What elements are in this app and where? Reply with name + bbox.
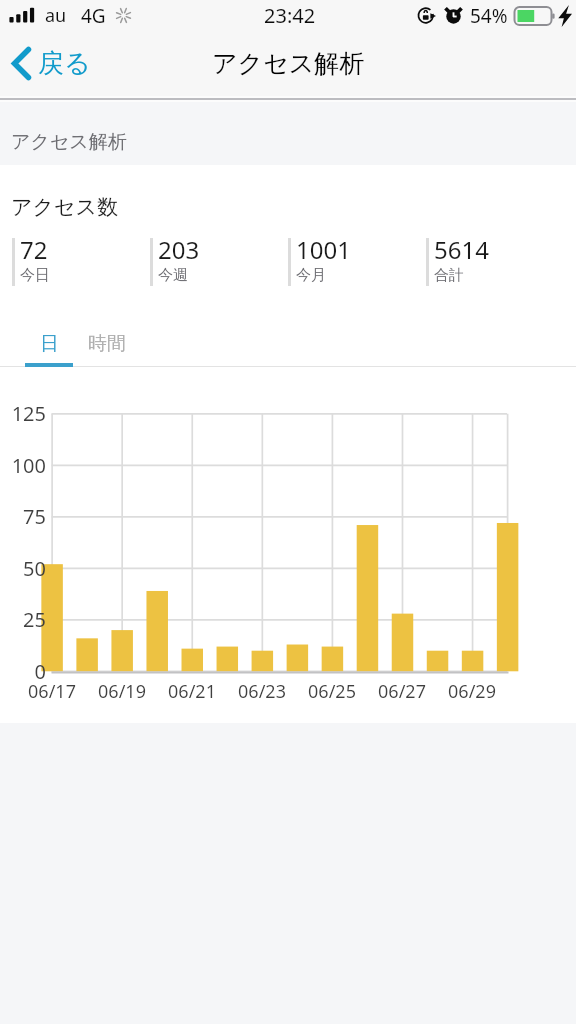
staticText: 72	[20, 233, 48, 266]
staticText: 0	[0, 658, 46, 685]
staticText: 今週	[158, 266, 188, 285]
staticText: 今月	[296, 266, 326, 285]
staticText: 5614	[434, 233, 489, 266]
button[interactable]: 戻る	[0, 41, 103, 86]
staticText: 1001	[296, 233, 351, 266]
staticText: 125	[0, 400, 46, 427]
staticText: 25	[0, 606, 46, 633]
button[interactable]: 日	[25, 322, 73, 367]
staticText: 06/23	[227, 679, 297, 704]
staticText: 06/17	[17, 679, 87, 704]
staticText: 06/21	[157, 679, 227, 704]
staticText: アクセス解析	[212, 48, 365, 79]
staticText: 合計	[434, 266, 464, 285]
staticText: 06/19	[87, 679, 157, 704]
staticText: au	[45, 3, 67, 28]
staticText: 100	[0, 452, 46, 479]
staticText: 23:42	[264, 2, 316, 29]
button[interactable]: 時間	[83, 322, 131, 367]
staticText: 時間	[88, 332, 126, 356]
staticText: アクセス数	[11, 194, 118, 220]
staticText: アクセス解析	[11, 130, 127, 154]
staticText: 06/29	[437, 679, 507, 704]
staticText: 50	[0, 555, 46, 582]
staticText: 日	[40, 332, 59, 356]
staticText: 06/27	[367, 679, 437, 704]
staticText: 54%	[470, 3, 508, 29]
staticText: 戻る	[38, 47, 91, 80]
staticText: 4G	[81, 3, 106, 29]
staticText: 06/25	[297, 679, 367, 704]
staticText: 203	[158, 233, 200, 266]
staticText: 今日	[20, 266, 50, 285]
staticText: 75	[0, 503, 46, 530]
